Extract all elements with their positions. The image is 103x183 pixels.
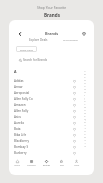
staticText: Aeropostal (14, 91, 30, 95)
button[interactable]: Back (15, 29, 24, 38)
staticText: Asics (14, 115, 22, 119)
staticText: Shop Your Favorite (37, 5, 67, 9)
staticText: Biba Life (14, 133, 27, 137)
staticText: Y (84, 142, 86, 145)
button[interactable]: Bombay S (9, 144, 94, 150)
staticText: Brands (45, 31, 59, 36)
staticText: Burberry (14, 151, 27, 155)
staticText: Bag (60, 164, 64, 167)
button[interactable]: Amazon (9, 102, 94, 108)
staticText: T (84, 127, 86, 130)
staticText: J (84, 97, 85, 100)
staticText: A (14, 69, 17, 74)
staticText: Adidas (14, 79, 24, 83)
button[interactable]: Biba Life (9, 132, 94, 138)
button[interactable]: Allen Solly (9, 108, 94, 114)
button[interactable]: Category (24, 158, 39, 167)
staticText: S (84, 124, 86, 127)
staticText: I (84, 94, 85, 97)
button[interactable]: Search for Brands (19, 56, 94, 64)
staticText: Arrow (14, 85, 23, 89)
staticText: Search for Brands (23, 58, 48, 62)
staticText: F (84, 85, 86, 88)
button[interactable]: Aeropostal (9, 90, 94, 96)
button[interactable]: Home (10, 158, 24, 167)
staticText: Bombay S (14, 145, 29, 149)
staticText: More (74, 164, 80, 167)
staticText: Category (27, 164, 36, 167)
staticText: L (84, 103, 86, 106)
staticText: Brands (44, 12, 60, 18)
staticText: U (84, 130, 86, 133)
button[interactable]: Adidas (9, 78, 94, 84)
button[interactable]: Burberry (9, 150, 94, 156)
staticText: M (84, 106, 86, 109)
button[interactable]: SHOP NOW (16, 46, 37, 52)
staticText: Brands (43, 164, 50, 167)
staticText: N (84, 109, 86, 112)
button[interactable]: More (69, 158, 84, 167)
button[interactable]: Brands (39, 158, 54, 167)
button[interactable]: Aurelia (9, 120, 94, 126)
button[interactable]: Bata (9, 126, 94, 132)
staticText: A (84, 70, 86, 73)
staticText: V (84, 133, 86, 136)
staticText: G (84, 88, 86, 91)
staticText: SHOP NOW (20, 48, 33, 51)
button[interactable]: Bag (54, 158, 69, 167)
staticText: Q (84, 118, 86, 121)
staticText: O (84, 112, 86, 115)
staticText: H (84, 91, 86, 94)
staticText: B (84, 73, 86, 76)
staticText: Explore Deals (29, 38, 48, 42)
staticText: R (84, 121, 86, 124)
staticText: Allen Solly (14, 109, 29, 113)
button[interactable]: Arrow (9, 84, 94, 90)
button[interactable]: Blackberry (9, 138, 94, 144)
button[interactable]: Asics (9, 114, 94, 120)
button[interactable]: Allen Solly Co (9, 96, 94, 102)
staticText: Amazon (14, 103, 26, 107)
staticText: SPONSORED (63, 38, 78, 41)
staticText: Blackberry (14, 139, 29, 143)
staticText: X (84, 139, 86, 142)
staticText: Z (84, 145, 86, 148)
button[interactable]: Favorites (79, 29, 88, 38)
staticText: C (84, 76, 86, 79)
staticText: E (84, 82, 86, 85)
staticText: K (84, 100, 86, 103)
staticText: Home (14, 164, 20, 167)
staticText: W (84, 136, 86, 139)
staticText: D (84, 79, 86, 82)
staticText: P (84, 115, 86, 118)
staticText: Aurelia (14, 121, 24, 125)
staticText: Allen Solly Co (14, 97, 33, 101)
staticText: Bata (14, 127, 21, 131)
